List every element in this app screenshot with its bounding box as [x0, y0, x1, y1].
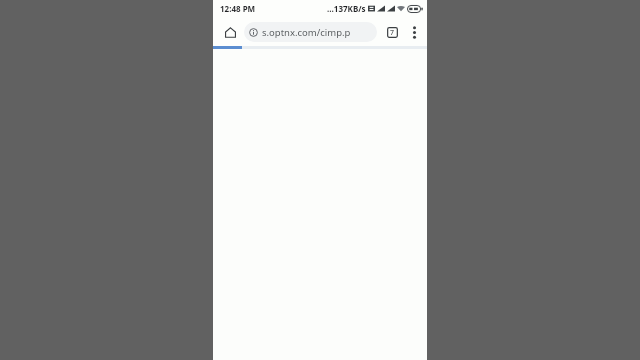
button[interactable]: Home — [218, 20, 242, 44]
staticText: s.optnx.com/cimp.p — [262, 26, 351, 39]
button[interactable]: More options — [404, 22, 424, 42]
button[interactable]: s.optnx.com/cimp.p — [244, 22, 377, 42]
button[interactable]: Switch tabs, 7 open — [381, 21, 403, 43]
staticText: 12:48 PM — [220, 3, 256, 14]
staticText: …137KB/s — [327, 3, 366, 14]
staticText: 7 — [390, 28, 395, 38]
